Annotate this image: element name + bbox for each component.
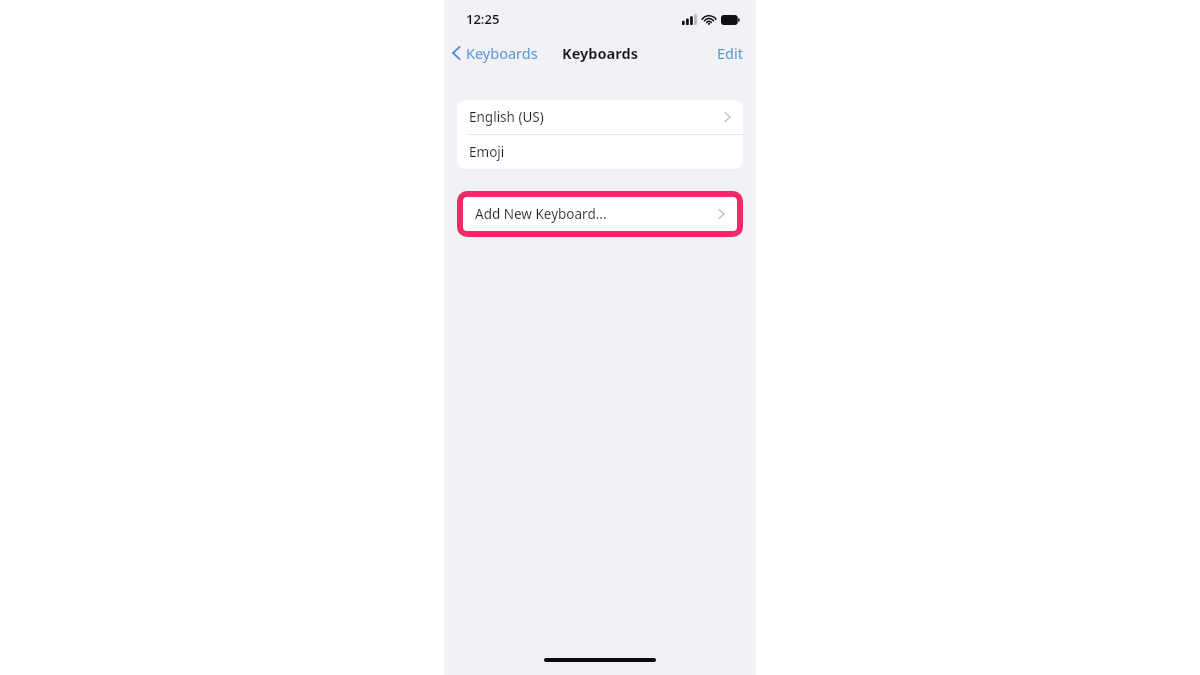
- staticText: Keyboards: [562, 43, 638, 63]
- button[interactable]: English (US): [457, 100, 743, 134]
- staticText: Keyboards: [466, 43, 538, 63]
- staticText: Edit: [717, 43, 743, 63]
- button[interactable]: Edit: [707, 39, 756, 67]
- staticText: 12:25: [466, 10, 500, 28]
- button[interactable]: Emoji: [457, 135, 743, 169]
- staticText: English (US): [469, 108, 724, 126]
- button[interactable]: Keyboards: [444, 39, 546, 67]
- staticText: Add New Keyboard...: [475, 205, 718, 223]
- button[interactable]: Add New Keyboard...: [463, 197, 737, 231]
- staticText: Emoji: [469, 143, 731, 161]
